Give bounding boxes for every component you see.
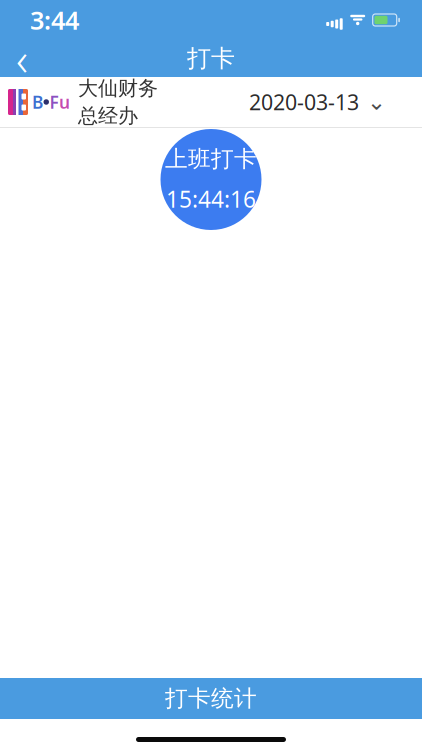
staticText: 2020-03-13 (249, 88, 359, 116)
staticText: 打卡 (187, 44, 235, 73)
staticText: u (59, 90, 70, 113)
staticText: 上班打卡 (165, 145, 257, 173)
button[interactable]: Back (0, 40, 44, 77)
staticText: F (49, 90, 58, 113)
button[interactable]: 上班打卡 (144, 129, 278, 230)
staticText: 总经办 (78, 103, 138, 128)
staticText: ‹ (16, 28, 28, 89)
staticText: 打卡统计 (165, 685, 257, 712)
button[interactable]: 2020-03-13 (249, 77, 422, 127)
button[interactable]: 打卡统计 (0, 678, 422, 719)
staticText: ⌄ (367, 89, 386, 115)
staticText: B (32, 90, 43, 113)
staticText: 15:44:16 (166, 184, 256, 214)
staticText: 大仙财务 (78, 76, 158, 100)
staticText: 3:44 (30, 3, 79, 37)
